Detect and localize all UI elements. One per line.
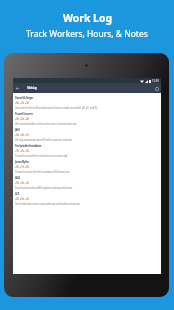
button[interactable]: ADA xyxy=(13,174,161,190)
staticText: 2 hr xyxy=(21,117,24,121)
button[interactable]: Fire Sprinkler Installation xyxy=(13,142,161,158)
staticText: 2 hr xyxy=(21,181,24,185)
staticText: Terminated aluminum using walkway and ba… xyxy=(15,202,81,206)
button[interactable]: ACE xyxy=(13,190,161,206)
staticText: 4 hr xyxy=(16,101,19,105)
button[interactable]: J&M xyxy=(13,126,161,142)
staticText: We moved sandbox to the east section of … xyxy=(15,122,77,126)
staticText: Fire Sprinkler Installation xyxy=(15,144,42,148)
staticText: 2 hr xyxy=(26,181,29,185)
staticText: ACE xyxy=(15,192,20,196)
staticText: 1 hr xyxy=(21,165,24,169)
button[interactable]: History xyxy=(153,85,160,92)
staticText: 7 hr xyxy=(16,149,19,153)
staticText: 5 hr xyxy=(21,197,24,201)
button[interactable]: Back xyxy=(14,85,21,92)
staticText: ADA xyxy=(15,176,20,180)
staticText: J&M xyxy=(15,128,20,132)
button[interactable]: Poured Concrete xyxy=(13,110,161,126)
staticText: 9 hr xyxy=(16,181,19,185)
staticText: 12:30 xyxy=(152,79,159,83)
staticText: 4 hr xyxy=(26,117,29,121)
staticText: 3 hr xyxy=(26,101,29,105)
staticText: 2 hr xyxy=(21,101,24,105)
staticText: 5 hr xyxy=(16,165,19,169)
staticText: Poured concrete for the foundation of Pa… xyxy=(15,170,70,174)
staticText: James Blythe xyxy=(15,160,29,164)
staticText: 4 hr xyxy=(26,165,29,169)
staticText: 6 hr xyxy=(16,117,19,121)
staticText: Poured Concrete xyxy=(15,112,33,116)
button[interactable]: Devon McGregor xyxy=(13,94,161,110)
staticText: Grouted the french floor bathroom & exte… xyxy=(15,106,98,110)
staticText: 4 hr xyxy=(16,133,19,137)
staticText: Expert spoils and landfill irrigation to… xyxy=(15,186,73,190)
staticText: 1 hr xyxy=(26,133,29,137)
button[interactable]: James Blythe xyxy=(13,158,161,174)
staticText: Devon McGregor xyxy=(15,96,34,100)
staticText: Work Log xyxy=(27,86,37,90)
staticText: 3 hr xyxy=(16,197,19,201)
staticText: We dug wastewater pond. Pond is located … xyxy=(15,138,73,142)
staticText: 3 hr xyxy=(21,133,24,137)
staticText: 2 hr xyxy=(26,197,29,201)
staticText: Poured formwork from bathroom to exterio… xyxy=(15,154,68,158)
staticText: Work Log xyxy=(63,11,112,25)
staticText: Track Workers, Hours, & Notes xyxy=(26,28,148,40)
staticText: 3 hr xyxy=(26,149,29,153)
staticText: 2 hr xyxy=(21,149,24,153)
